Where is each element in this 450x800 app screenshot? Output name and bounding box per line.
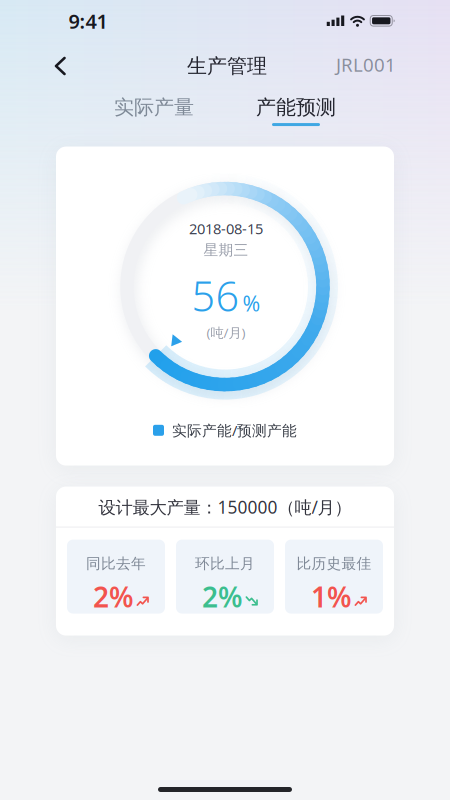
staticText: 产能预测: [256, 95, 336, 120]
button[interactable]: 实际产量: [83, 95, 225, 126]
staticText: 环比上月: [195, 555, 255, 573]
staticText: 比历史最佳: [296, 555, 371, 573]
staticText: 实际产能/预测产能: [172, 421, 297, 440]
staticText: (吨/月): [206, 324, 245, 341]
staticText: %: [242, 289, 260, 317]
button[interactable]: Back: [43, 46, 77, 86]
staticText: 生产管理: [187, 54, 267, 78]
staticText: 2%: [93, 578, 134, 615]
staticText: 2018-08-15: [189, 219, 263, 238]
staticText: 同比去年: [86, 555, 146, 573]
button[interactable]: JRL001: [336, 52, 396, 77]
staticText: 实际产量: [114, 95, 194, 120]
button[interactable]: 产能预测: [225, 95, 367, 126]
staticText: 56: [191, 268, 239, 323]
staticText: JRL001: [336, 52, 396, 77]
staticText: 2%: [202, 578, 243, 615]
staticText: 9:41: [68, 8, 107, 34]
staticText: 1%: [311, 578, 352, 615]
staticText: 设计最大产量：150000（吨/月）: [98, 496, 351, 519]
staticText: 星期三: [203, 241, 248, 259]
